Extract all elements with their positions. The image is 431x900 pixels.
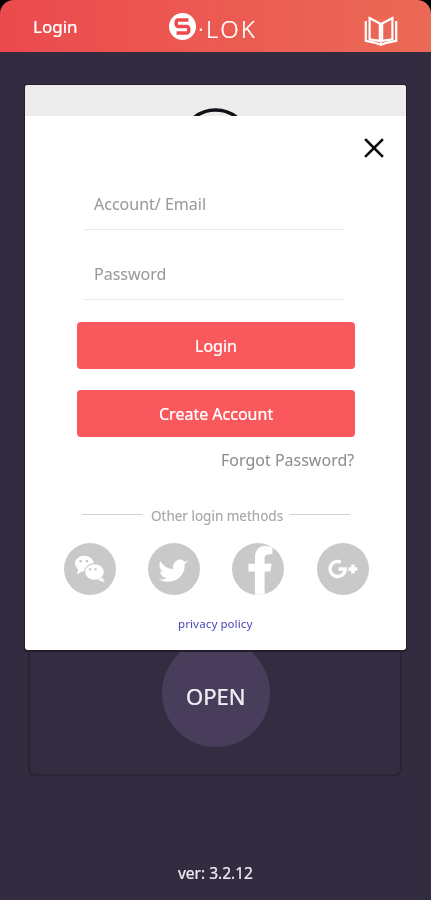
staticText: Other login methods <box>151 507 284 525</box>
button[interactable]: Google login <box>317 543 369 595</box>
staticText: Create Account <box>159 403 274 425</box>
button[interactable]: Login <box>21 7 90 46</box>
button[interactable]: Manual <box>360 10 402 52</box>
staticText: privacy policy <box>178 616 253 632</box>
button[interactable]: Forgot Password? <box>217 445 359 475</box>
staticText: Login <box>195 335 237 357</box>
button[interactable]: WeChat login <box>64 543 116 595</box>
button[interactable]: Close <box>357 131 391 165</box>
staticText: Account/ Email <box>94 193 207 215</box>
staticText: Password <box>94 263 167 285</box>
button[interactable]: OPEN <box>162 639 270 747</box>
staticText: ·LOK <box>198 12 258 39</box>
staticText: Forgot Password? <box>221 449 355 471</box>
button[interactable]: Facebook login <box>232 543 284 595</box>
staticText: OPEN <box>186 681 246 711</box>
button[interactable]: Twitter login <box>148 543 200 595</box>
staticText: ver: 3.2.12 <box>178 862 253 883</box>
button[interactable]: Create Account <box>77 390 355 437</box>
button[interactable]: privacy policy <box>175 613 256 635</box>
staticText: Login <box>33 15 78 38</box>
button[interactable]: Login <box>77 322 355 369</box>
